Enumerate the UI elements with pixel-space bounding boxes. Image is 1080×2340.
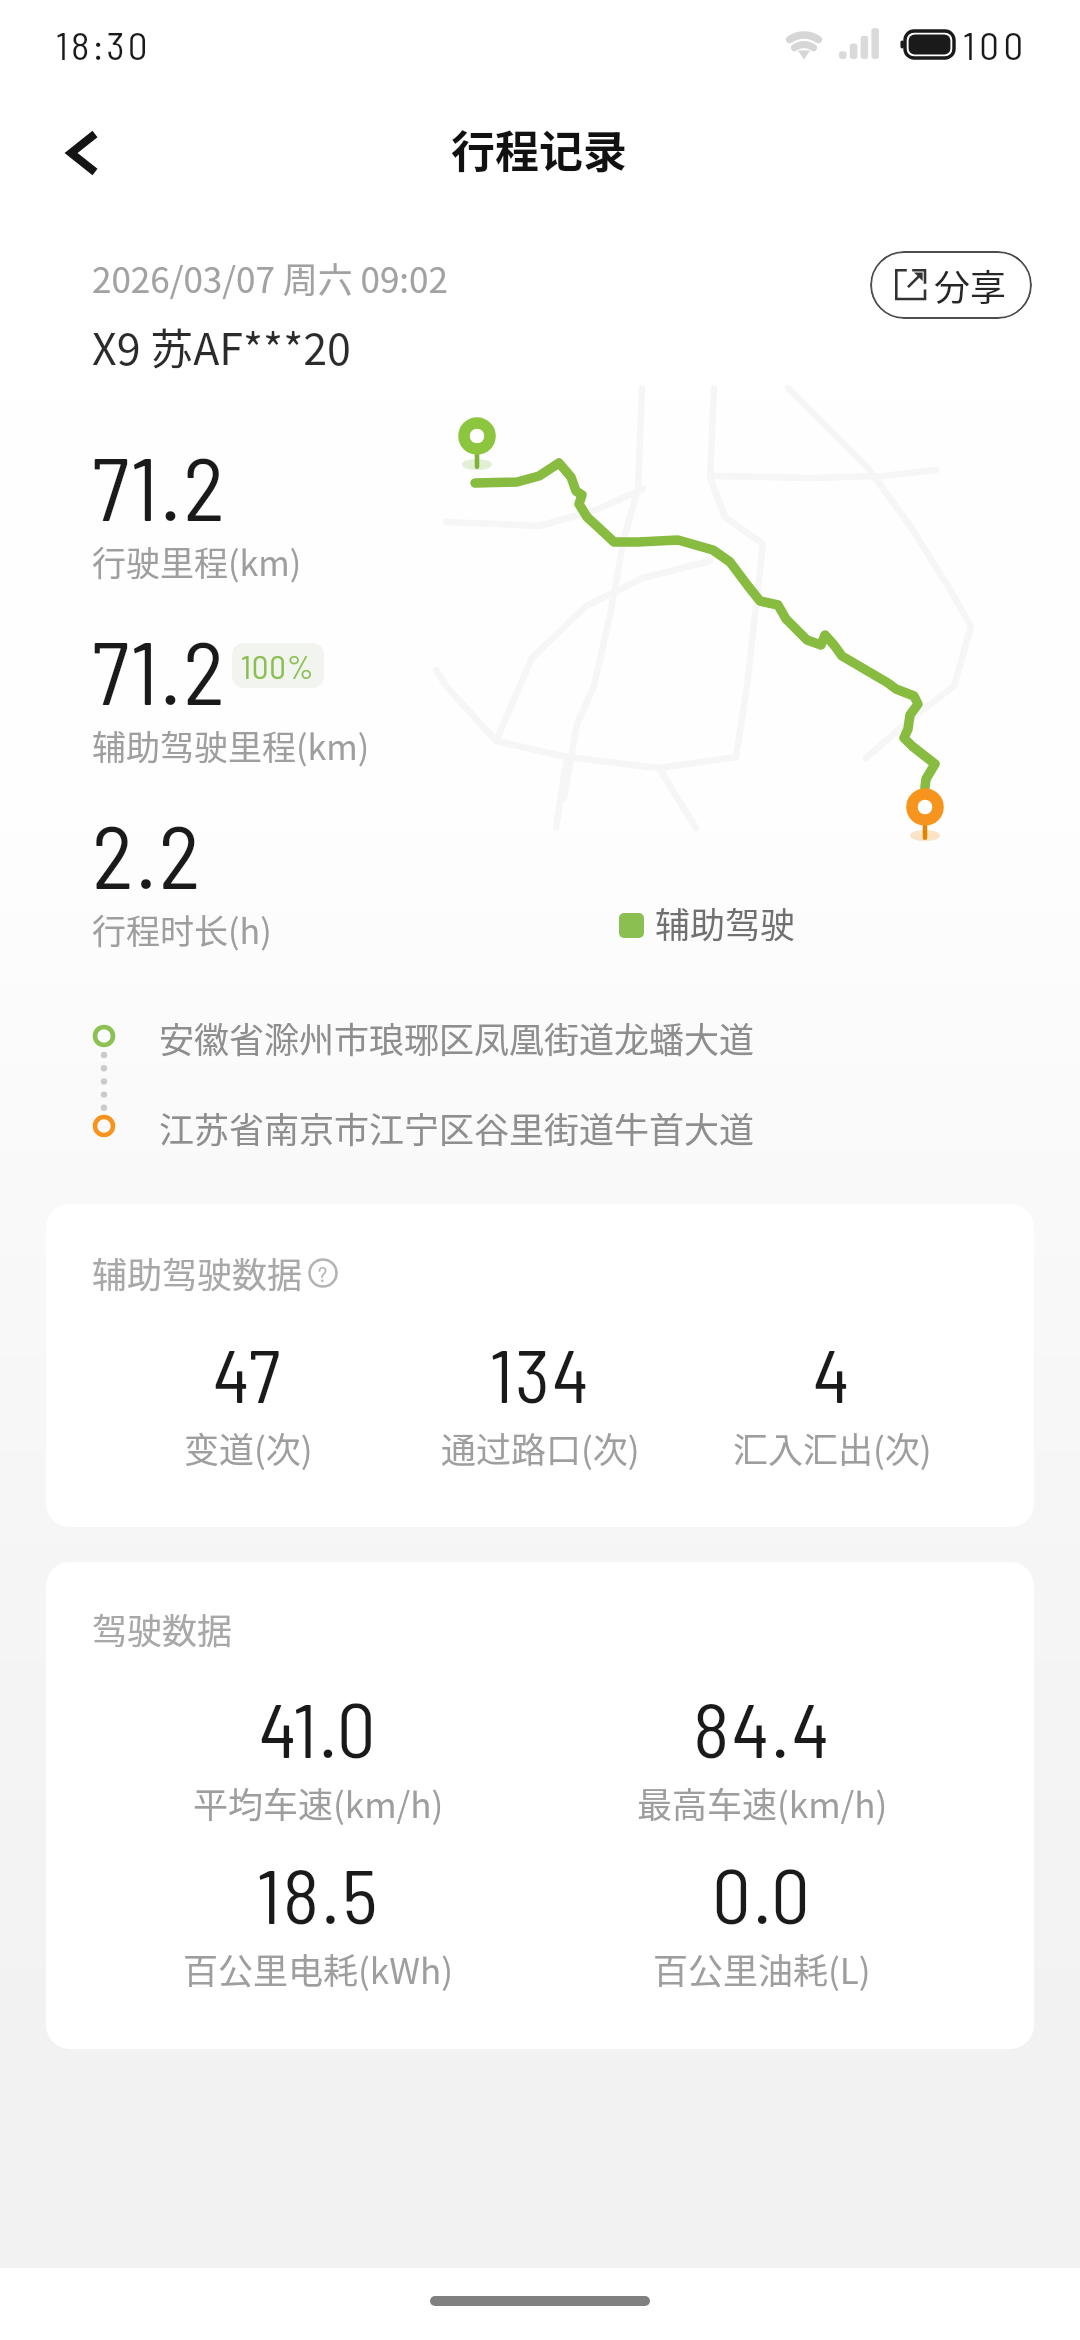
button[interactable]: 分享 [870, 251, 1032, 319]
staticText: 百公里电耗(kWh) [183, 1943, 453, 1994]
button[interactable]: 辅助驾驶 [619, 897, 796, 948]
staticText: 最高车速(km/h) [637, 1777, 888, 1828]
staticText: 84.4 [693, 1681, 832, 1773]
staticText: 0.0 [712, 1847, 813, 1939]
staticText: 18.5 [257, 1847, 380, 1939]
staticText: 行程记录 [451, 117, 627, 181]
staticText: 分享 [934, 259, 1007, 311]
staticText: X9 苏AF***20 [92, 315, 351, 377]
staticText: 行驶里程(km) [92, 537, 302, 586]
staticText: 百公里油耗(L) [653, 1943, 871, 1994]
staticText: 平均车速(km/h) [193, 1777, 444, 1828]
staticText: 47 [213, 1328, 283, 1418]
staticText: 4 [813, 1328, 852, 1418]
staticText: 71.2 [92, 617, 227, 723]
staticText: 辅助驾驶 [655, 897, 796, 948]
staticText: 2.2 [92, 801, 203, 907]
staticText: 汇入汇出(次) [733, 1422, 932, 1473]
staticText: 18:30 [56, 21, 151, 68]
staticText: 辅助驾驶里程(km) [92, 721, 370, 770]
staticText: 江苏省南京市江宁区谷里街道牛首大道 [159, 1102, 755, 1153]
staticText: 100% [241, 646, 315, 686]
staticText: 安徽省滁州市琅琊区凤凰街道龙蟠大道 [159, 1012, 755, 1063]
staticText: 通过路口(次) [441, 1422, 640, 1473]
staticText: 71.2 [92, 433, 227, 539]
button[interactable]: 辅助驾驶数据 [46, 1204, 1034, 1527]
button[interactable]: 驾驶数据 [46, 1562, 1034, 2049]
staticText: 辅助驾驶数据 [92, 1247, 303, 1298]
staticText: 驾驶数据 [92, 1603, 233, 1654]
button[interactable]: Back [35, 107, 127, 199]
staticText: 41.0 [259, 1681, 378, 1773]
staticText: 行程时长(h) [92, 905, 272, 954]
staticText: 变道(次) [184, 1422, 313, 1473]
staticText: 134 [490, 1328, 591, 1418]
staticText: ? [318, 1260, 328, 1286]
staticText: 2026/03/07 周六 09:02 [92, 252, 448, 303]
staticText: 100 [963, 21, 1028, 68]
